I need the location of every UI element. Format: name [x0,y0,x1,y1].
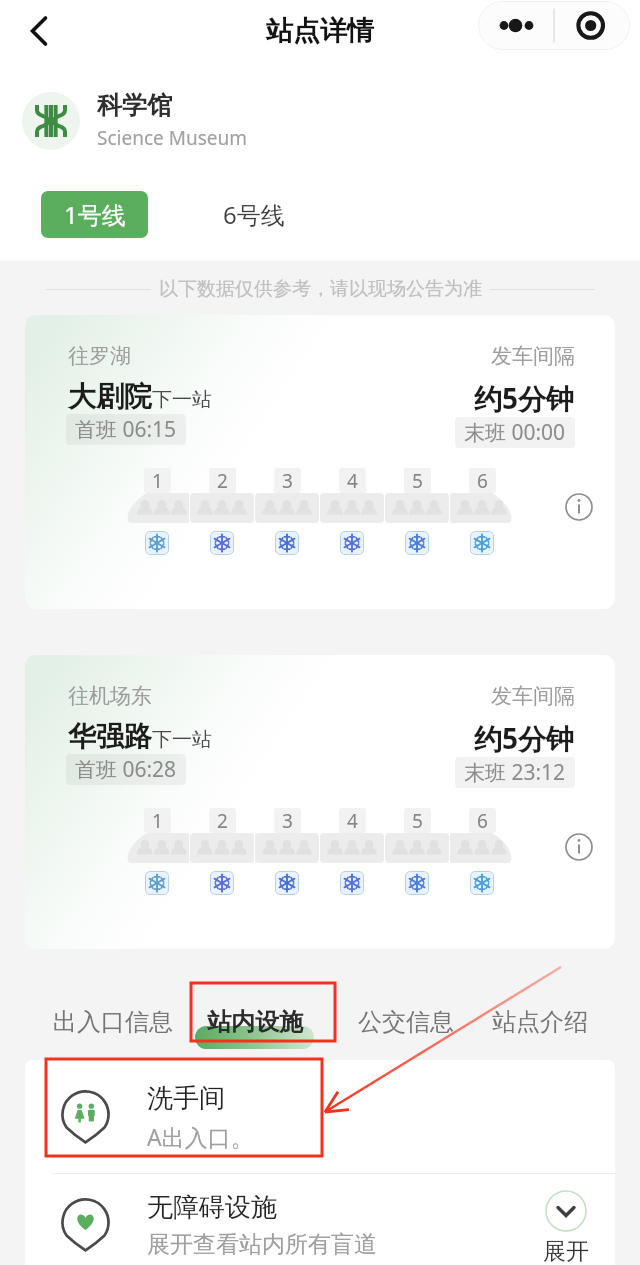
button[interactable]: Back [16,8,62,54]
button[interactable]: Expand [543,1190,597,1265]
staticText: 约5分钟 [474,719,575,757]
staticText: 约5分钟 [474,379,575,417]
staticText: 1 [152,468,163,493]
staticText: 首班 06:28 [75,755,177,784]
button[interactable]: 往罗湖 [25,315,615,609]
button[interactable]: 出入口信息 [53,998,173,1046]
button[interactable]: 洗手间 [25,1060,615,1173]
staticText: 3 [282,808,293,833]
button[interactable]: More options [478,1,554,50]
staticText: 6 [477,808,488,833]
button[interactable]: 6号线 [190,191,318,238]
staticText: 5 [412,808,423,833]
staticText: 1 [152,808,163,833]
staticText: 发车间隔 [491,343,575,369]
staticText: 无障碍设施 [147,1191,277,1224]
button[interactable]: Info [565,493,593,521]
staticText: 往罗湖 [68,343,131,369]
button[interactable]: Close [554,1,630,50]
button[interactable]: Info [565,833,593,861]
staticText: 以下数据仅供参考，请以现场公告为准 [159,277,482,301]
staticText: 展开查看站内所有盲道 [147,1230,377,1259]
button[interactable]: 往机场东 [25,655,615,949]
staticText: 华强路 [68,719,152,754]
staticText: 2 [217,468,228,493]
button[interactable]: 无障碍设施 [25,1168,615,1265]
staticText: 发车间隔 [491,683,575,709]
staticText: 科学馆 [97,90,172,121]
staticText: 大剧院 [68,379,152,414]
staticText: 6号线 [223,198,285,231]
staticText: 6 [477,468,488,493]
staticText: 站点详情 [266,14,374,48]
staticText: 末班 23:12 [464,758,566,787]
staticText: 5 [412,468,423,493]
staticText: 展开 [543,1237,589,1265]
button[interactable]: 站点介绍 [492,998,588,1046]
staticText: 站内设施 [207,1007,303,1037]
staticText: Science Museum [97,125,247,151]
staticText: A出入口。 [147,1121,254,1152]
staticText: 往机场东 [68,683,152,709]
staticText: 3 [282,468,293,493]
staticText: 1号线 [64,198,126,231]
staticText: 首班 06:15 [75,415,177,444]
button[interactable]: 1号线 [41,191,148,238]
staticText: 公交信息 [358,1007,454,1037]
staticText: 2 [217,808,228,833]
staticText: 下一站 [152,727,212,752]
button[interactable]: 公交信息 [358,998,454,1046]
staticText: 下一站 [152,387,212,412]
staticText: 4 [347,808,358,833]
staticText: 末班 00:00 [464,418,566,447]
staticText: 洗手间 [147,1082,225,1115]
staticText: 出入口信息 [53,1007,173,1037]
button[interactable]: 站内设施 [207,998,303,1046]
staticText: 站点介绍 [492,1007,588,1037]
staticText: 4 [347,468,358,493]
